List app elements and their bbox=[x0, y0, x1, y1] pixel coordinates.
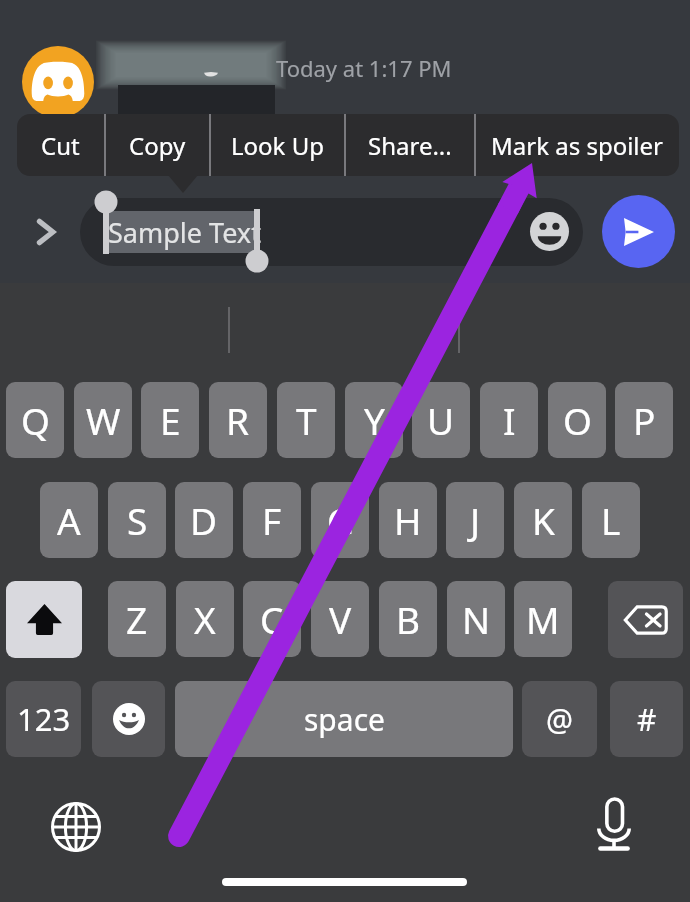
staticText: P bbox=[633, 395, 656, 445]
button[interactable]: F bbox=[243, 482, 301, 558]
button[interactable]: S bbox=[108, 482, 166, 558]
staticText: H bbox=[394, 495, 422, 545]
button[interactable]: Emoji bbox=[525, 207, 573, 255]
button[interactable]: K bbox=[514, 482, 572, 558]
staticText: Sample Text bbox=[108, 214, 261, 251]
button[interactable]: J bbox=[446, 482, 504, 558]
staticText: D bbox=[190, 495, 218, 545]
button[interactable]: Avatar bbox=[22, 46, 94, 118]
staticText: I bbox=[503, 395, 516, 445]
button[interactable]: N bbox=[447, 581, 505, 657]
button[interactable]: Z bbox=[108, 581, 166, 657]
button[interactable]: Expand bbox=[21, 208, 69, 256]
button[interactable]: Share... bbox=[346, 114, 474, 176]
button[interactable]: space bbox=[175, 681, 513, 757]
staticText: N bbox=[462, 594, 491, 644]
staticText: A bbox=[57, 495, 81, 545]
button[interactable]: H bbox=[379, 482, 437, 558]
staticText: G bbox=[327, 495, 354, 545]
staticText: space bbox=[304, 699, 385, 740]
button[interactable]: # bbox=[610, 681, 683, 757]
staticText: L bbox=[601, 495, 621, 545]
staticText: Z bbox=[126, 594, 148, 644]
button[interactable]: Cut bbox=[17, 114, 104, 176]
staticText: # bbox=[637, 699, 657, 740]
staticText: O bbox=[563, 395, 592, 445]
staticText: B bbox=[396, 594, 421, 644]
staticText: Today at 1:17 PM bbox=[276, 53, 452, 83]
button[interactable]: Sample Text bbox=[80, 198, 583, 266]
staticText: U bbox=[427, 395, 455, 445]
button[interactable]: X bbox=[176, 581, 234, 657]
staticText: R bbox=[226, 395, 250, 445]
staticText: Copy bbox=[129, 129, 186, 162]
button[interactable]: M bbox=[514, 581, 572, 657]
button[interactable]: Backspace bbox=[608, 581, 683, 658]
button[interactable]: G bbox=[311, 482, 369, 558]
button[interactable]: Copy bbox=[106, 114, 209, 176]
button[interactable]: U bbox=[412, 382, 470, 458]
button[interactable]: Shift bbox=[6, 581, 82, 658]
staticText: Q bbox=[21, 395, 50, 445]
staticText: F bbox=[262, 495, 282, 545]
button[interactable]: B bbox=[379, 581, 437, 657]
staticText: Mark as spoiler bbox=[491, 129, 664, 162]
staticText: 123 bbox=[17, 698, 71, 740]
button[interactable]: Change keyboard bbox=[46, 797, 106, 857]
staticText: Y bbox=[364, 395, 385, 445]
button[interactable]: V bbox=[311, 581, 369, 657]
button[interactable]: R bbox=[209, 382, 267, 458]
staticText: Look Up bbox=[231, 129, 324, 162]
staticText: E bbox=[160, 395, 181, 445]
button[interactable]: O bbox=[548, 382, 606, 458]
staticText: @ bbox=[546, 699, 573, 740]
button[interactable]: A bbox=[40, 482, 98, 558]
staticText: T bbox=[296, 395, 317, 445]
button[interactable]: Send bbox=[602, 195, 675, 268]
button[interactable]: @ bbox=[522, 681, 597, 757]
button[interactable]: Dictate bbox=[584, 794, 644, 854]
button[interactable]: Mark as spoiler bbox=[476, 114, 679, 176]
button[interactable]: C bbox=[243, 581, 301, 657]
staticText: M bbox=[526, 594, 560, 644]
button[interactable]: I bbox=[480, 382, 538, 458]
staticText: Share... bbox=[368, 129, 452, 162]
button[interactable]: D bbox=[175, 482, 233, 558]
staticText: J bbox=[470, 495, 481, 545]
staticText: X bbox=[194, 594, 216, 644]
staticText: W bbox=[86, 395, 121, 445]
button[interactable]: W bbox=[74, 382, 132, 458]
staticText: C bbox=[260, 594, 284, 644]
staticText: S bbox=[127, 495, 148, 545]
button[interactable]: P bbox=[615, 382, 673, 458]
button[interactable]: Q bbox=[6, 382, 64, 458]
button[interactable]: Emoji keyboard bbox=[92, 681, 165, 757]
button[interactable]: T bbox=[277, 382, 335, 458]
staticText: V bbox=[329, 594, 352, 644]
staticText: K bbox=[532, 495, 555, 545]
button[interactable]: E bbox=[141, 382, 199, 458]
button[interactable]: Y bbox=[345, 382, 403, 458]
button[interactable]: L bbox=[582, 482, 640, 558]
button[interactable]: Numbers bbox=[6, 681, 81, 757]
staticText: Cut bbox=[41, 129, 80, 162]
button[interactable]: Look Up bbox=[211, 114, 344, 176]
